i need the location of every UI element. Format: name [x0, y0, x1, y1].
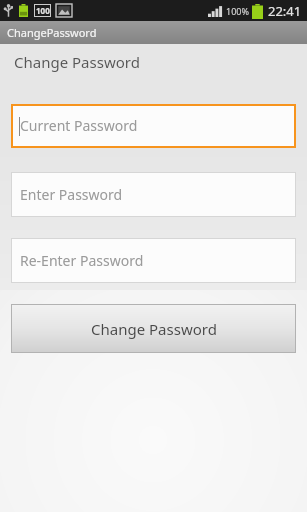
staticText: ChangePassword — [7, 25, 97, 40]
button[interactable]: Current Password — [13, 106, 294, 146]
staticText: Current Password — [20, 116, 138, 135]
staticText: 100% — [226, 5, 249, 17]
staticText: Change Password — [14, 52, 140, 72]
staticText: Re-Enter Password — [20, 251, 144, 270]
button[interactable]: Re-Enter Password — [12, 239, 295, 282]
staticText: 22:41 — [268, 2, 302, 20]
button[interactable]: Change Password — [12, 305, 295, 352]
button[interactable]: Enter Password — [12, 173, 295, 216]
staticText: Enter Password — [20, 185, 123, 204]
staticText: 100 — [36, 5, 50, 16]
staticText: Change Password — [91, 319, 217, 339]
